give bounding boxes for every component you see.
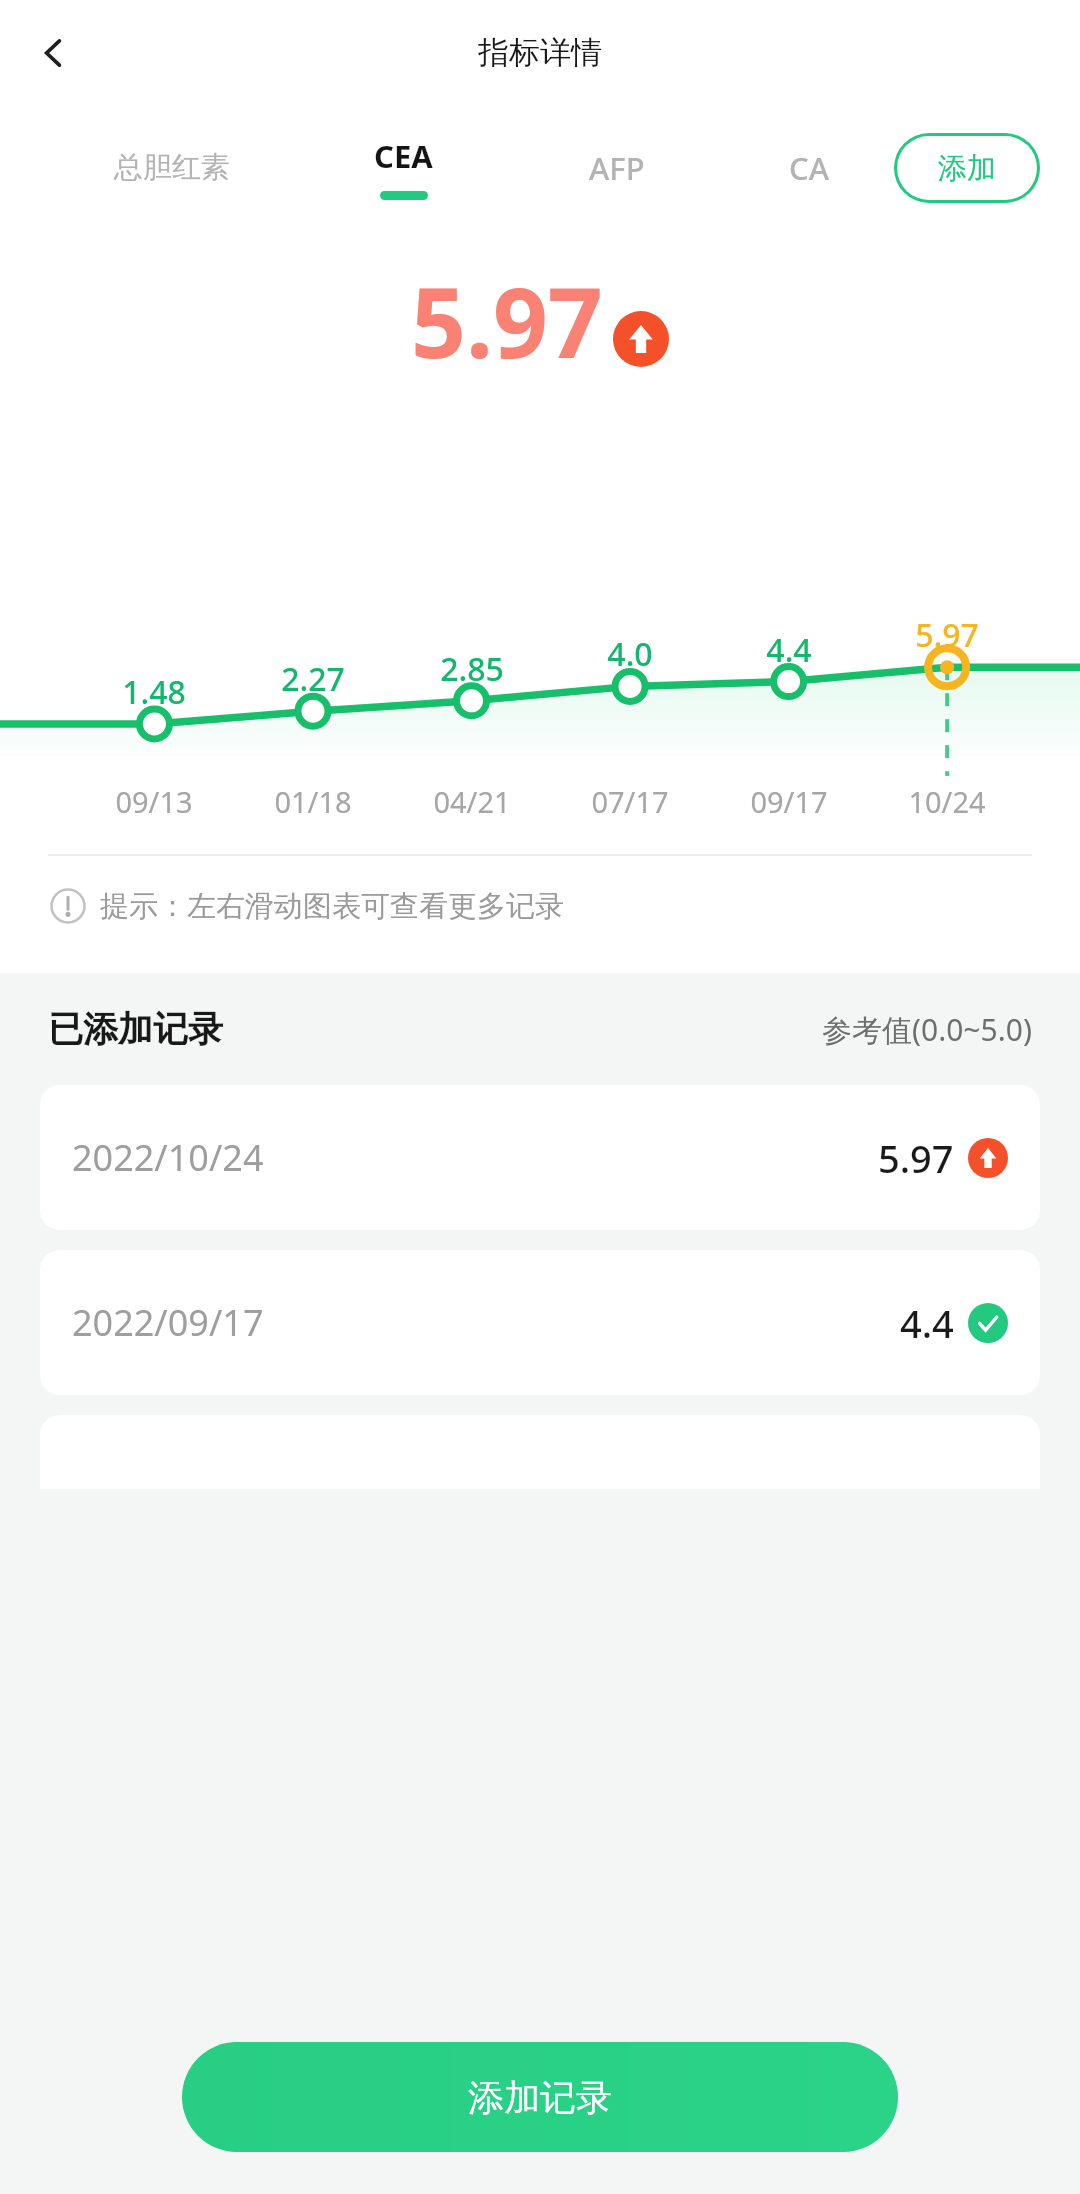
button[interactable]: 总胆红素 (46, 105, 297, 230)
button[interactable]: CEA (297, 105, 510, 230)
staticText: 07/17 (572, 782, 688, 821)
staticText: 4.4 (735, 628, 843, 672)
staticText: 指标详情 (478, 33, 602, 72)
staticText: 2022/10/24 (72, 1133, 264, 1182)
staticText: 5.97 (893, 613, 1001, 657)
staticText: 10/24 (889, 782, 1005, 821)
staticText: AFP (589, 147, 645, 189)
staticText: CA (789, 147, 829, 189)
button[interactable]: Back (22, 22, 84, 84)
button[interactable]: AFP (510, 105, 723, 230)
button[interactable]: 2022/10/24 (40, 1085, 1040, 1230)
staticText: 09/13 (96, 782, 212, 821)
button[interactable]: 2022/09/17 (40, 1250, 1040, 1395)
staticText: 5.97 (878, 1132, 954, 1184)
staticText: 2.27 (259, 657, 367, 701)
staticText: 09/17 (731, 782, 847, 821)
staticText: 已添加记录 (48, 1007, 223, 1051)
staticText: 提示：左右滑动图表可查看更多记录 (100, 888, 564, 925)
button[interactable]: 添加 (897, 136, 1037, 200)
staticText: 1.48 (100, 670, 208, 714)
button[interactable]: CA (723, 105, 894, 230)
staticText: 添加 (938, 150, 996, 187)
staticText: 01/18 (255, 782, 371, 821)
staticText: 添加记录 (468, 2075, 612, 2120)
button[interactable]: 添加记录 (182, 2042, 898, 2152)
staticText: 04/21 (414, 782, 530, 821)
staticText: 4.0 (576, 632, 684, 676)
staticText: 2022/09/17 (72, 1298, 264, 1347)
staticText: 4.4 (900, 1297, 954, 1349)
staticText: 参考值(0.0~5.0) (822, 1009, 1032, 1050)
staticText: 5.97 (411, 255, 603, 386)
staticText: CEA (374, 135, 433, 177)
staticText: 2.85 (418, 647, 526, 691)
staticText: 总胆红素 (114, 149, 230, 186)
